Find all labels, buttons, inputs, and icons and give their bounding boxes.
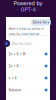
staticText: Step-by-step xyxy=(12,42,32,45)
staticText: Solution xyxy=(8,88,21,92)
staticText: 2x + 5 = 13 xyxy=(8,52,25,56)
staticText: Powered by xyxy=(13,0,42,6)
staticText: Here's how to solve it xyxy=(8,27,43,31)
staticText: 2x = 8 xyxy=(8,64,18,68)
staticText: Solve for x xyxy=(32,20,49,24)
button[interactable]: 2x = 8 xyxy=(6,60,50,72)
staticText: · GPT-4 · xyxy=(16,6,39,13)
staticText: step by step below. xyxy=(8,32,39,36)
button[interactable]: Solution xyxy=(6,84,50,96)
button[interactable]: x = 4 xyxy=(6,72,50,84)
button[interactable]: 2x + 5 = 13 xyxy=(6,48,50,60)
staticText: x = 4 xyxy=(8,76,16,80)
